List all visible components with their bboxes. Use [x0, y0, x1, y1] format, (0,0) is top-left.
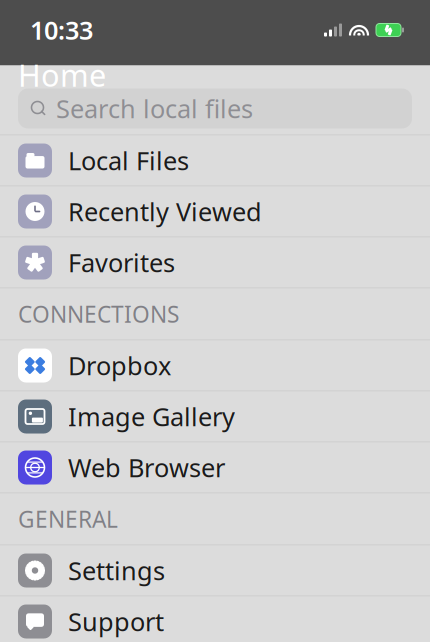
button[interactable]: Favorites: [0, 237, 430, 288]
staticText: 10:33: [30, 13, 93, 47]
staticText: Local Files: [68, 144, 189, 177]
staticText: Favorites: [68, 246, 175, 279]
button[interactable]: Recently Viewed: [0, 186, 430, 237]
button[interactable]: Search local files: [18, 88, 412, 128]
button[interactable]: Settings: [0, 545, 430, 596]
staticText: Dropbox: [68, 349, 171, 382]
staticText: GENERAL: [18, 504, 118, 534]
button[interactable]: Dropbox: [0, 340, 430, 391]
staticText: Search local files: [56, 92, 253, 125]
button[interactable]: Support: [0, 596, 430, 642]
staticText: Web Browser: [68, 451, 225, 484]
button[interactable]: Image Gallery: [0, 391, 430, 442]
staticText: Support: [68, 605, 164, 638]
staticText: Image Gallery: [68, 400, 235, 433]
button[interactable]: Local Files: [0, 135, 430, 186]
staticText: Settings: [68, 554, 165, 587]
staticText: Home: [18, 54, 106, 95]
staticText: Recently Viewed: [68, 195, 262, 228]
staticText: CONNECTIONS: [18, 299, 179, 329]
button[interactable]: Web Browser: [0, 442, 430, 493]
